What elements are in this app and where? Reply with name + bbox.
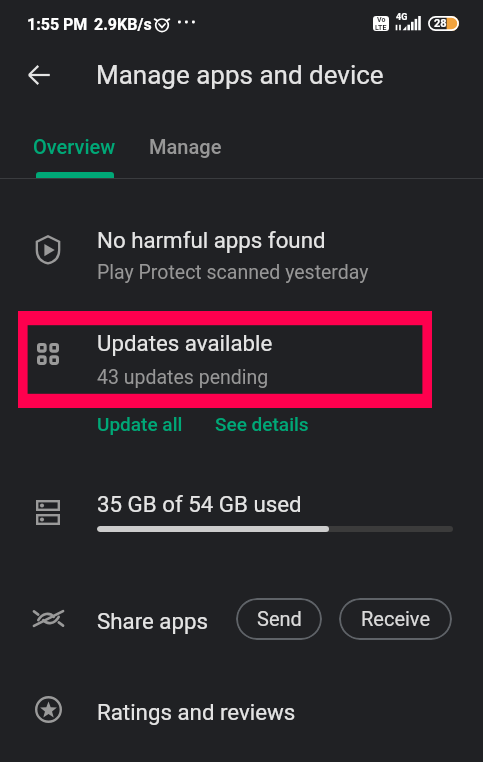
- button[interactable]: Update all: [97, 413, 183, 435]
- staticText: Play Protect scanned yesterday: [97, 261, 369, 284]
- staticText: No harmful apps found: [97, 227, 326, 253]
- button[interactable]: See details: [215, 413, 309, 435]
- staticText: 43 updates pending: [97, 366, 269, 389]
- staticText: 35 GB of 54 GB used: [97, 491, 302, 517]
- staticText: Share apps: [97, 608, 209, 634]
- staticText: Send: [257, 607, 302, 630]
- staticText: Overview: [33, 135, 116, 158]
- button[interactable]: Manage: [149, 135, 222, 158]
- staticText: LTE: [375, 24, 387, 31]
- staticText: 1:55 PM: [27, 15, 88, 34]
- staticText: Ratings and reviews: [97, 699, 296, 725]
- staticText: Manage apps and device: [96, 60, 384, 90]
- button[interactable]: Send: [236, 598, 322, 640]
- staticText: 2.9KB/s: [94, 15, 152, 34]
- staticText: Receive: [361, 607, 431, 630]
- staticText: Updates available: [97, 330, 273, 356]
- staticText: 4G: [396, 12, 408, 23]
- staticText: Manage: [149, 135, 222, 158]
- staticText: See details: [215, 413, 309, 435]
- button[interactable]: Overview: [33, 135, 116, 158]
- staticText: 28: [434, 17, 447, 30]
- button[interactable]: Receive: [339, 598, 452, 640]
- staticText: Update all: [97, 413, 183, 435]
- staticText: Vo: [377, 16, 386, 24]
- button[interactable]: Back: [21, 57, 56, 92]
